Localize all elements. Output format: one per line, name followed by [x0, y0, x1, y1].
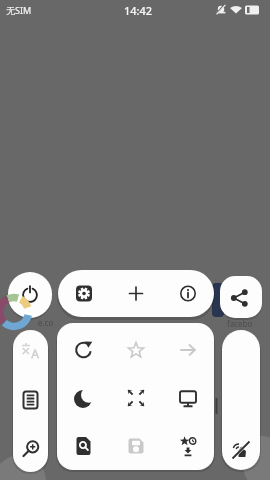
button[interactable] — [162, 270, 214, 317]
button[interactable] — [13, 382, 48, 418]
button[interactable] — [57, 422, 110, 470]
button[interactable] — [110, 374, 162, 422]
button[interactable] — [110, 422, 162, 470]
button[interactable] — [162, 422, 214, 470]
button[interactable] — [13, 431, 48, 467]
button[interactable] — [57, 374, 110, 422]
button[interactable] — [110, 326, 162, 374]
button[interactable] — [58, 270, 110, 317]
staticText: facebo — [227, 318, 253, 329]
staticText: e.co — [38, 317, 54, 328]
staticText: 无SIM — [6, 4, 32, 16]
button[interactable] — [13, 330, 48, 370]
button[interactable] — [110, 270, 162, 317]
button[interactable] — [162, 374, 214, 422]
staticText: 14:42 — [124, 3, 153, 18]
button[interactable] — [57, 326, 110, 374]
button[interactable] — [162, 326, 214, 374]
button[interactable] — [8, 272, 52, 318]
button[interactable] — [223, 432, 259, 470]
button[interactable] — [220, 276, 262, 318]
